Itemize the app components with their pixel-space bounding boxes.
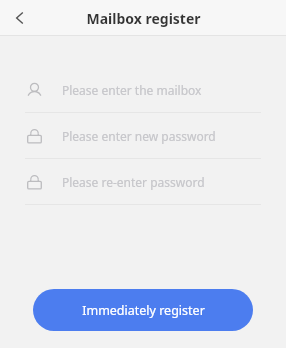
staticText: Mailbox register [86,9,201,28]
button[interactable]: Mailbox [0,67,286,113]
staticText: Please re-enter password [62,174,205,190]
button[interactable]: Back [0,0,40,36]
button[interactable]: Immediately register [33,289,253,331]
staticText: Please enter the mailbox [62,82,202,98]
button[interactable]: New password [0,113,286,159]
staticText: Immediately register [82,302,205,319]
staticText: Please enter new password [62,128,216,144]
button[interactable]: Re-enter password [0,159,286,205]
